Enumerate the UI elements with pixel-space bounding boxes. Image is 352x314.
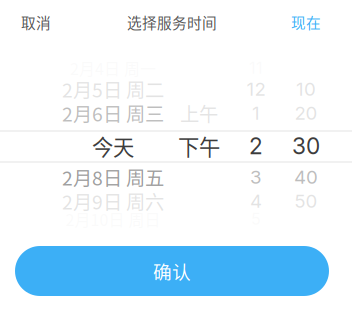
staticText: 今天 — [92, 131, 134, 161]
staticText: 确认 — [153, 257, 191, 284]
staticText: 2 — [249, 132, 263, 160]
staticText: 选择服务时间 — [127, 11, 217, 33]
staticText: 现在 — [291, 11, 321, 33]
staticText: 上午 — [180, 99, 218, 127]
button[interactable]: 确认 — [15, 246, 329, 296]
staticText: 12 — [246, 78, 265, 100]
staticText: 2月10日 周日 — [65, 207, 160, 231]
staticText: 2月5日 周二 — [62, 75, 164, 103]
staticText: 20 — [294, 102, 317, 124]
staticText: 2月6日 周三 — [62, 99, 164, 127]
staticText: 2月8日 周五 — [62, 163, 164, 191]
button[interactable]: 现在 — [275, 0, 337, 44]
button[interactable]: 取消 — [0, 0, 72, 44]
staticText: 40 — [294, 166, 318, 188]
staticText: 4 — [250, 190, 262, 212]
staticText: 50 — [294, 190, 317, 212]
staticText: 下午 — [178, 131, 220, 161]
staticText: 1 — [252, 102, 260, 124]
staticText: 取消 — [21, 11, 51, 33]
staticText: 2月9日 周六 — [62, 187, 164, 215]
staticText: 30 — [292, 132, 320, 160]
staticText: 10 — [296, 78, 316, 100]
staticText: 3 — [250, 166, 262, 188]
